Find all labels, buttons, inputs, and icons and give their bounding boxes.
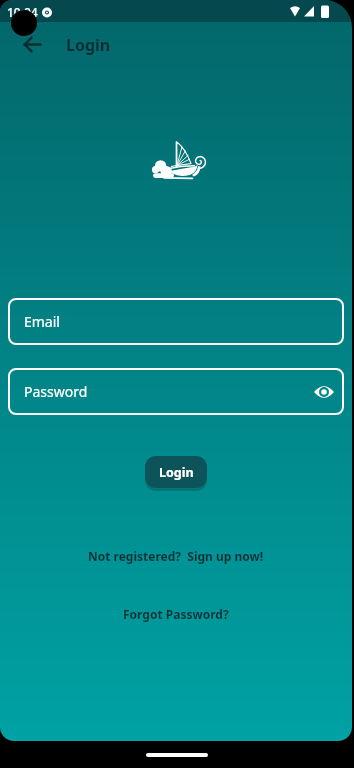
staticText: Not registered? Sign up now! xyxy=(88,548,264,564)
staticText: Email xyxy=(24,312,60,331)
button[interactable]: Not registered? Sign up now! xyxy=(88,548,264,564)
button[interactable]: Forgot Password? xyxy=(123,606,229,622)
button[interactable]: Email xyxy=(8,298,344,345)
button[interactable] xyxy=(12,24,52,64)
button[interactable]: Login xyxy=(145,456,207,488)
staticText: 10:04 xyxy=(7,4,38,20)
staticText: Login xyxy=(159,464,194,481)
staticText: Login xyxy=(66,34,111,56)
staticText: Forgot Password? xyxy=(123,606,229,622)
button[interactable]: Password xyxy=(8,368,344,415)
staticText: Password xyxy=(24,382,88,401)
